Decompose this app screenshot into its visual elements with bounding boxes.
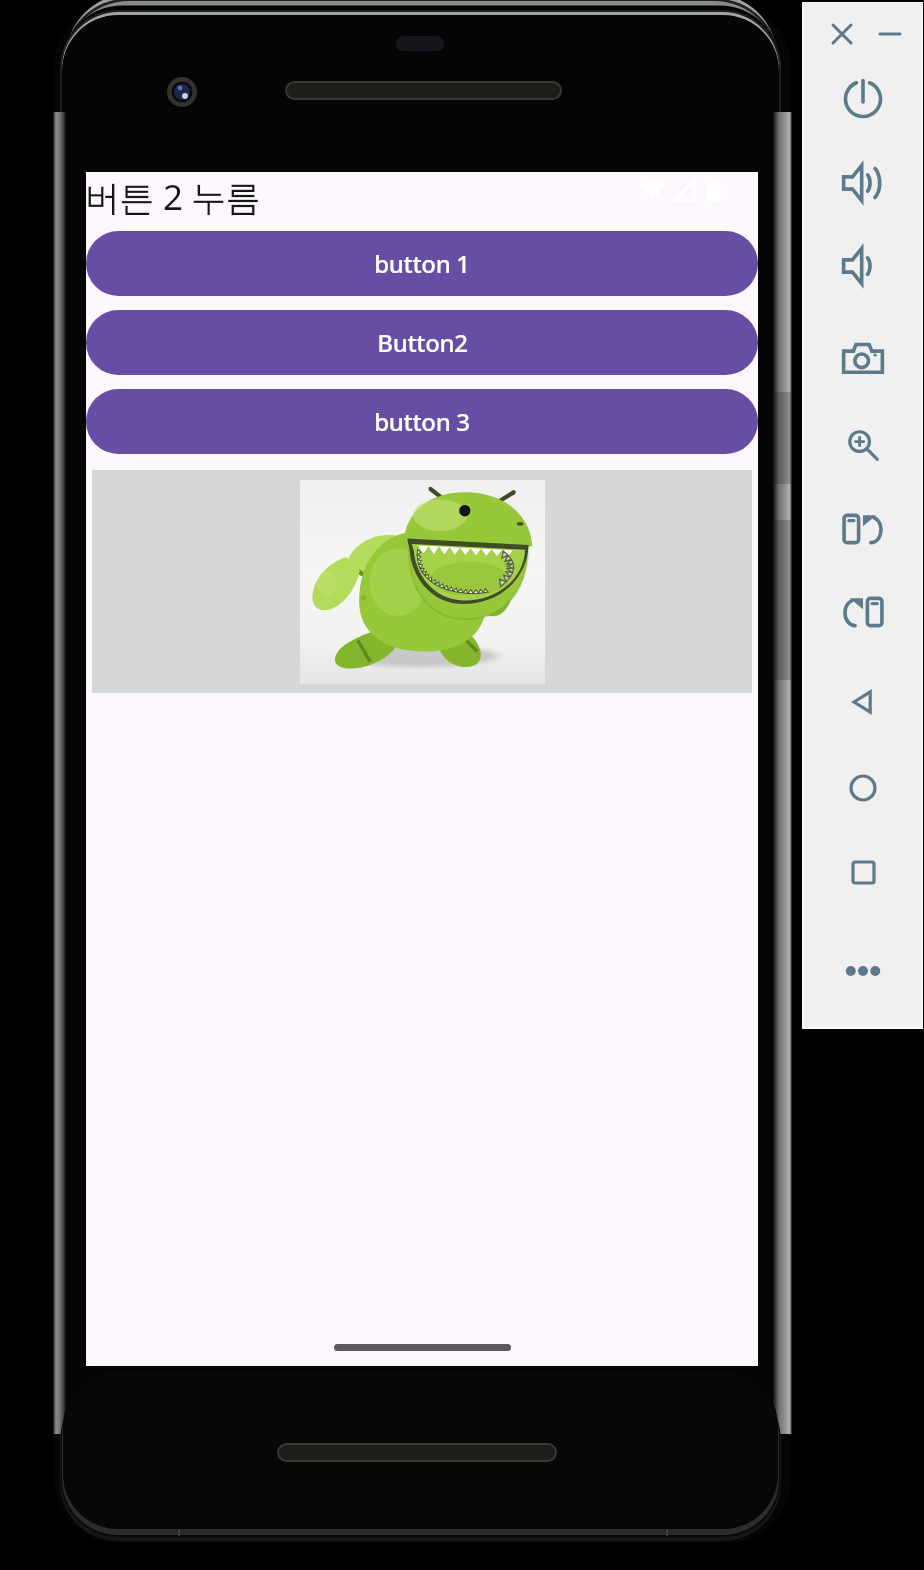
button[interactable]: Screenshot	[841, 337, 885, 381]
button[interactable]: Power	[841, 76, 885, 120]
button[interactable]: Back	[841, 680, 885, 724]
staticText: 버튼 2 누름	[85, 173, 261, 221]
staticText: button 1	[374, 247, 470, 280]
button[interactable]: Volume down	[841, 244, 885, 288]
button[interactable]: Rotate right	[841, 590, 885, 634]
button[interactable]: Rotate left	[841, 507, 885, 551]
button[interactable]: More options	[841, 949, 885, 993]
button[interactable]: Minimize	[874, 18, 906, 50]
staticText: Button2	[377, 326, 468, 359]
button[interactable]: Button2	[86, 310, 758, 375]
button[interactable]: Zoom	[841, 423, 885, 467]
button[interactable]: Recents	[841, 850, 885, 894]
button[interactable]: Close	[826, 18, 858, 50]
button[interactable]: Home gesture bar	[334, 1344, 511, 1351]
button[interactable]: Home	[841, 766, 885, 810]
button[interactable]: button 3	[86, 389, 758, 454]
button[interactable]: Volume up	[841, 161, 885, 205]
staticText: button 3	[374, 405, 470, 438]
button[interactable]: button 1	[86, 231, 758, 296]
